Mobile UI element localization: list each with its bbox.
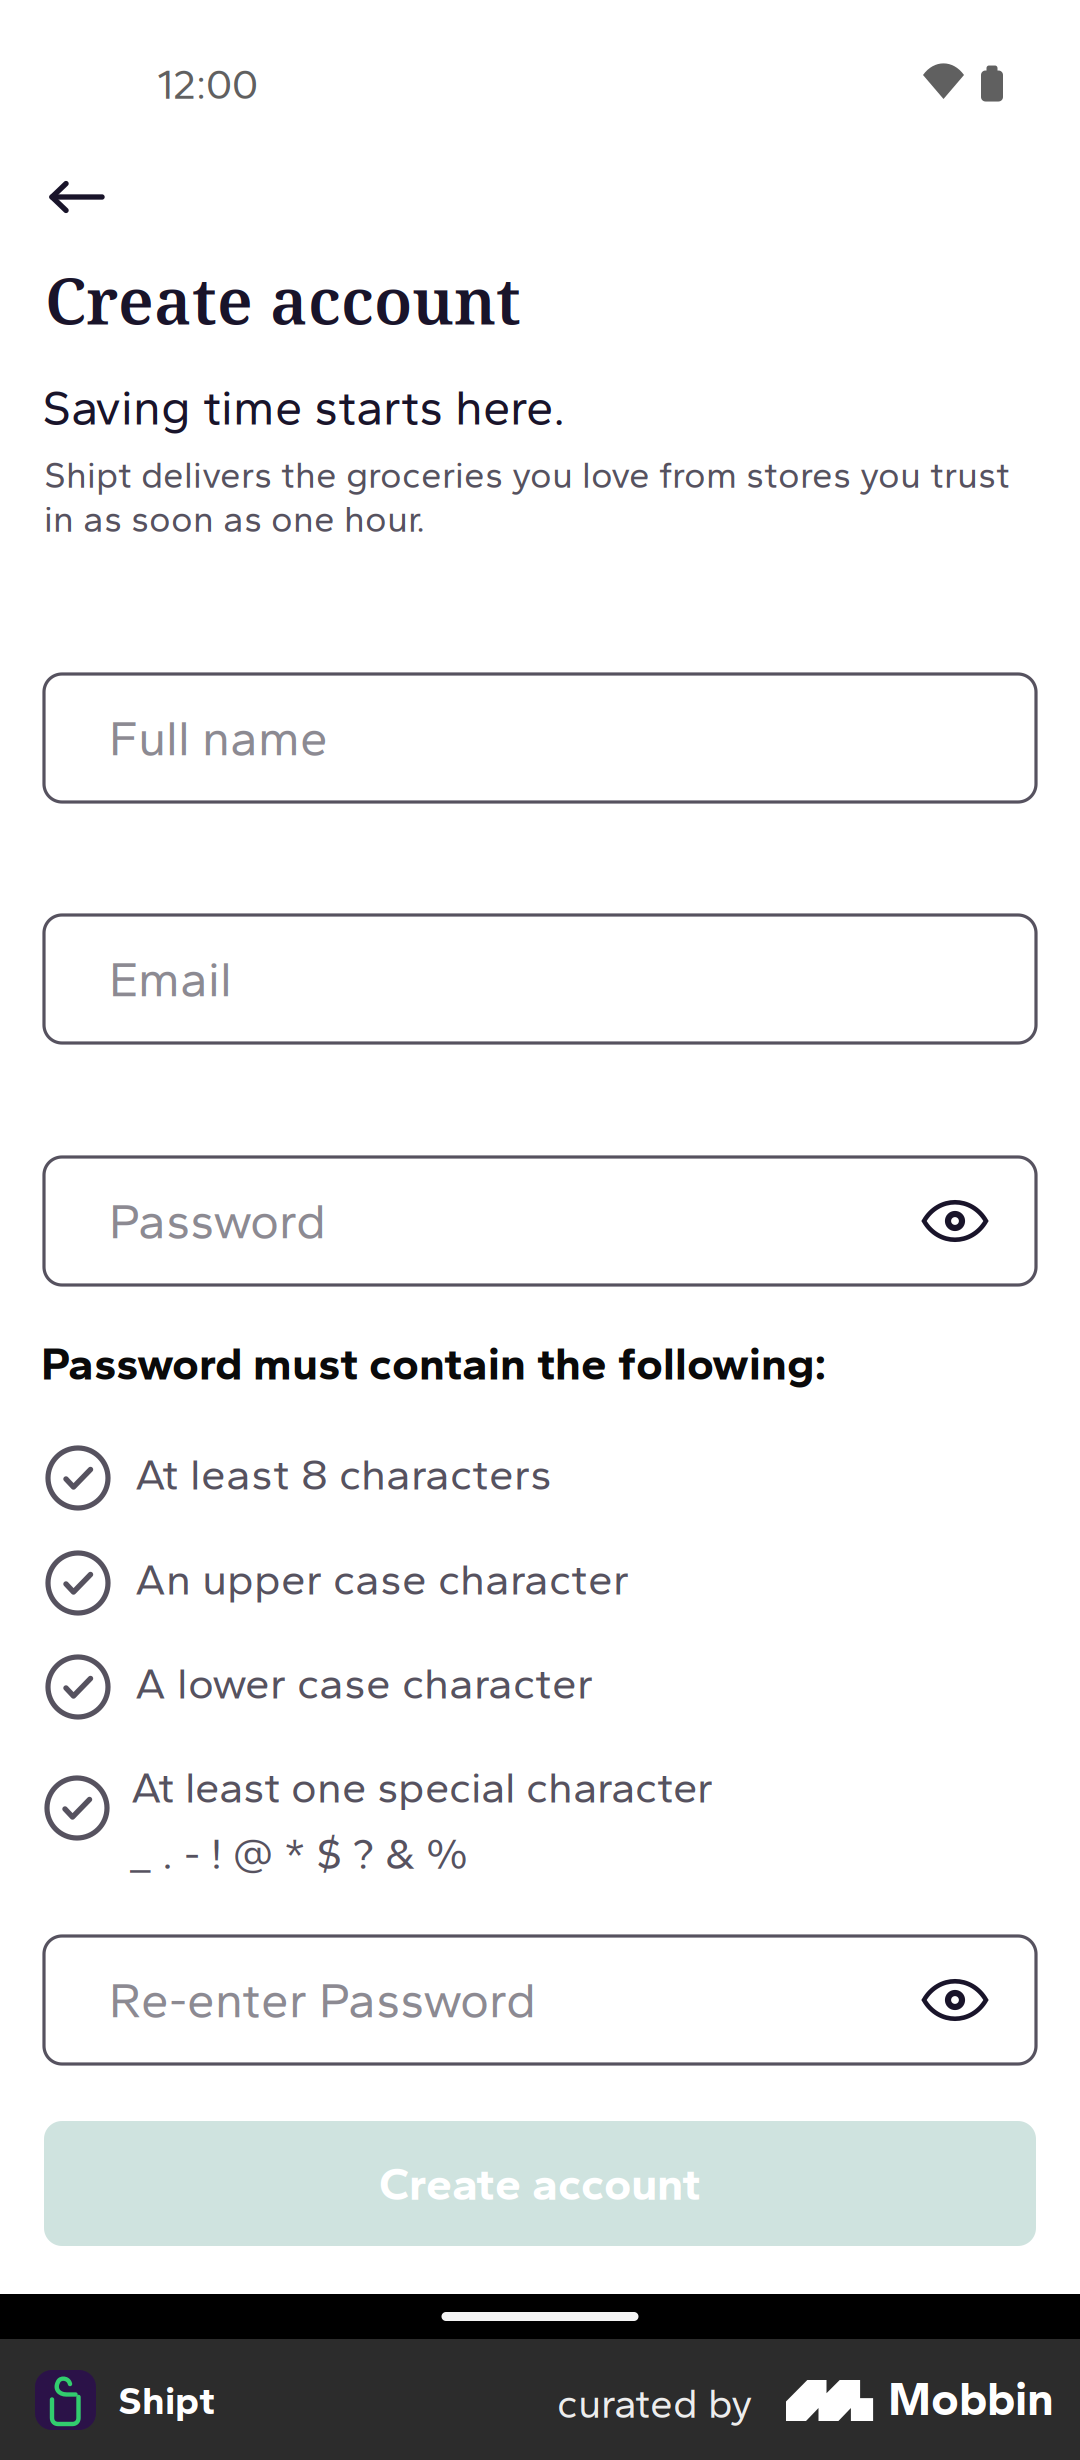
staticText: An upper case character [135,1553,629,1605]
staticText: Full name [109,708,328,768]
staticText: Saving time starts here. [42,378,565,437]
staticText: 12:00 [157,60,258,109]
button[interactable]: Back [3,149,129,245]
button[interactable]: Password [44,1157,1036,1285]
staticText: _ . - ! @ * $ ? & % [130,1827,468,1880]
staticText: Create account [45,256,521,343]
staticText: Password [109,1191,326,1251]
staticText: Password must contain the following: [41,1336,827,1391]
button[interactable]: Create account [44,2121,1036,2246]
staticText: curated by [557,2379,753,2428]
staticText: Create account [379,2156,701,2211]
button[interactable]: Email [44,915,1036,1043]
button[interactable]: Full name [44,674,1036,802]
staticText: A lower case character [135,1657,593,1709]
staticText: Mobbin [888,2370,1054,2427]
staticText: At least one special character [131,1761,713,1813]
staticText: Email [109,949,232,1009]
staticText: At least 8 characters [135,1448,552,1500]
button[interactable]: Re-enter Password [44,1936,1036,2064]
staticText: Shipt [118,2376,215,2424]
staticText: Re-enter Password [109,1970,536,2030]
staticText: Shipt delivers the groceries you love fr… [44,453,1010,541]
